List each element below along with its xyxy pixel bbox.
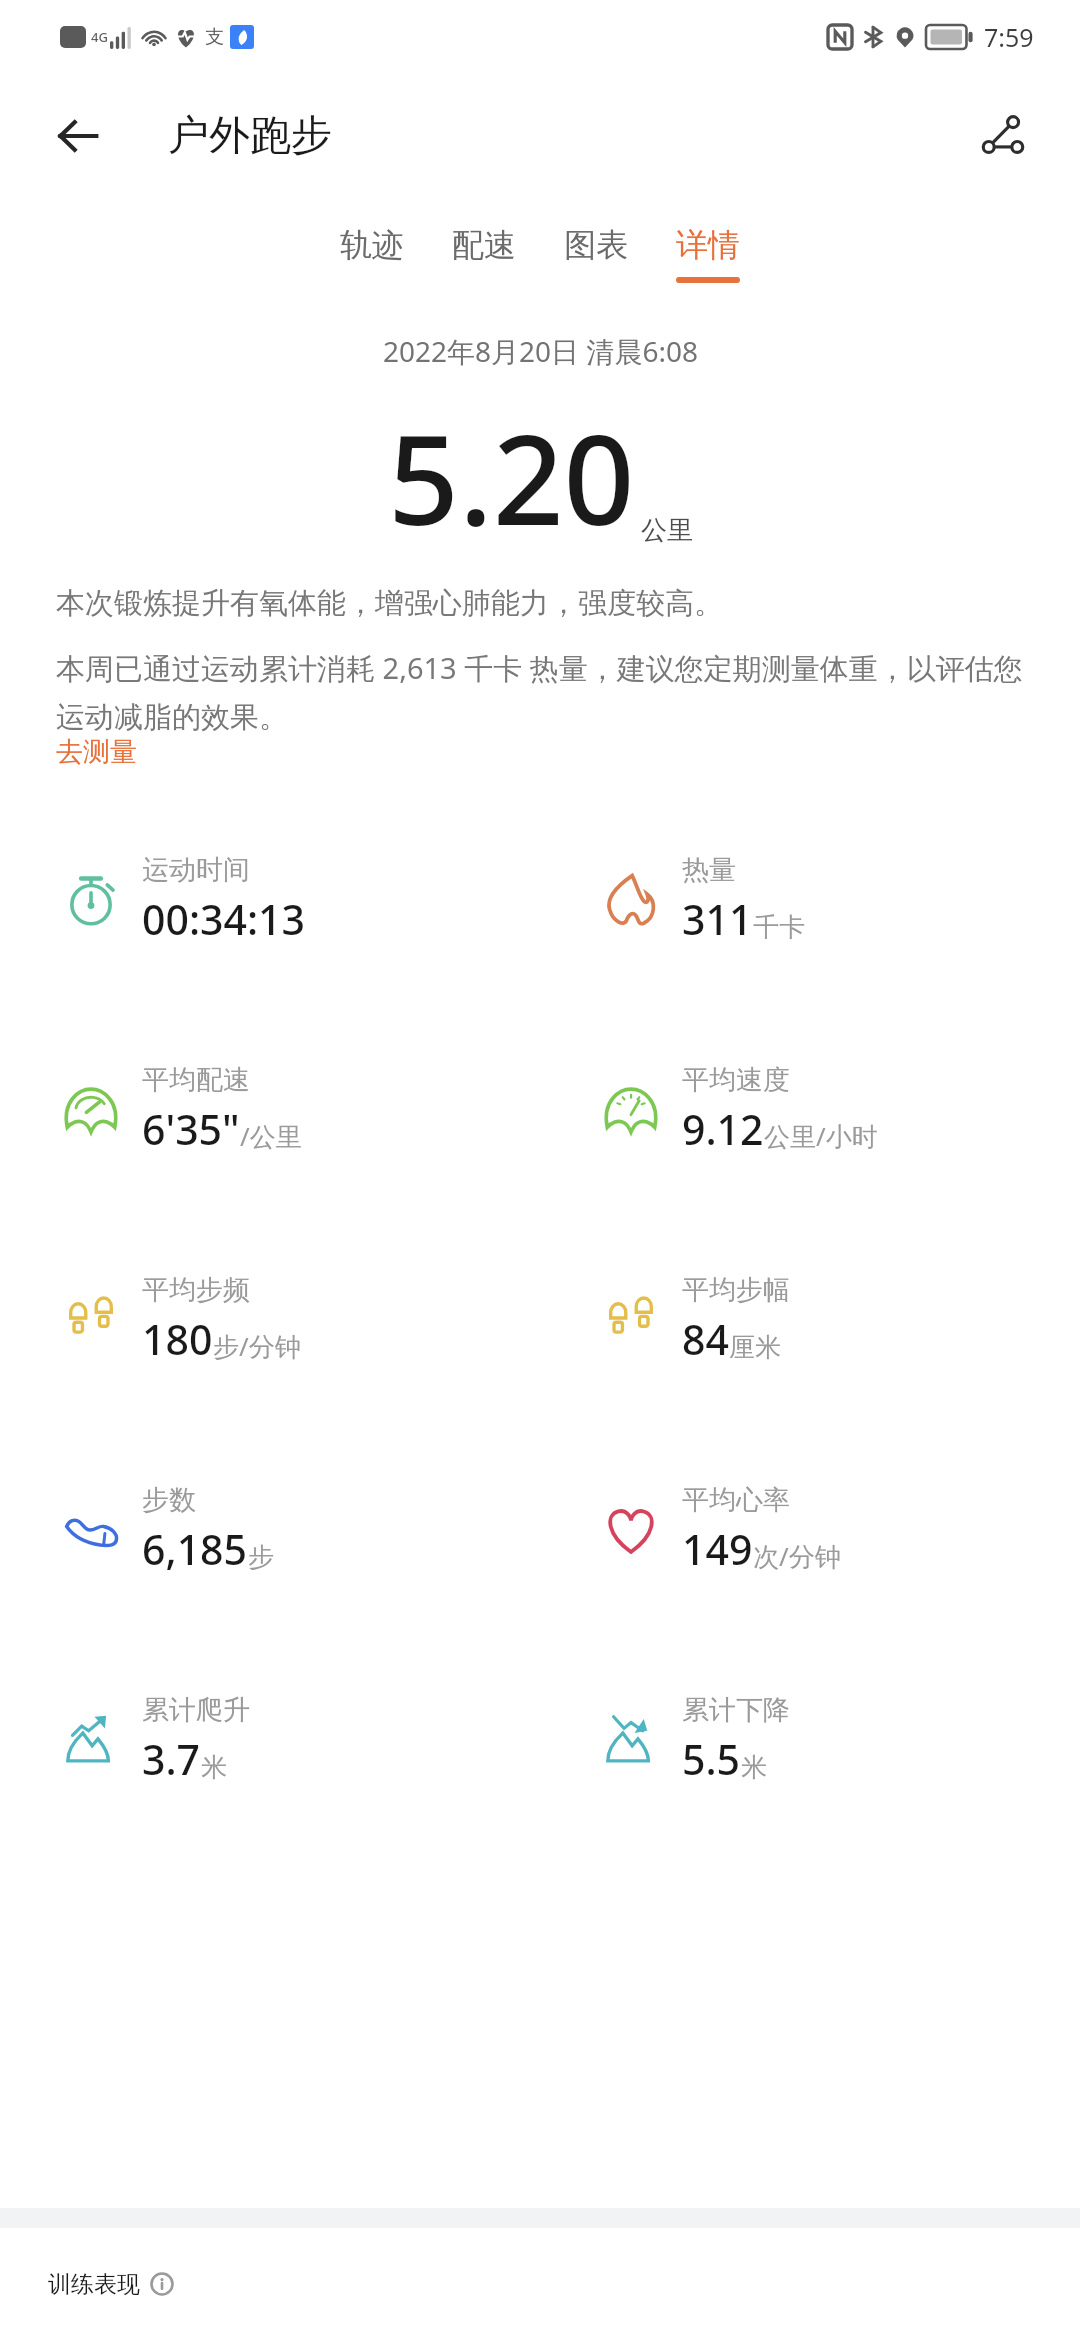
staticText: 步 <box>248 1541 274 1574</box>
staticText: 千卡 <box>753 911 805 944</box>
staticText: 米 <box>741 1751 767 1784</box>
button[interactable]: 平均步幅 <box>540 1215 1080 1425</box>
button[interactable]: 详情 <box>652 217 764 291</box>
staticText: 户外跑步 <box>168 110 332 162</box>
button[interactable]: 平均心率 <box>540 1425 1080 1635</box>
staticText: 训练表现 <box>48 2270 140 2299</box>
staticText: 3.7 <box>142 1731 201 1787</box>
button[interactable]: 累计爬升 <box>0 1635 540 1845</box>
button[interactable]: Back <box>40 103 114 169</box>
staticText: 厘米 <box>729 1331 781 1364</box>
staticText: 9.12 <box>682 1101 764 1157</box>
button[interactable]: 步数 <box>0 1425 540 1635</box>
button[interactable]: 去测量 <box>56 735 137 769</box>
staticText: 累计爬升 <box>142 1693 250 1727</box>
staticText: 311 <box>682 891 753 947</box>
staticText: 180 <box>142 1311 213 1367</box>
staticText: 5.5 <box>682 1731 741 1787</box>
staticText: 公里/小时 <box>764 1118 878 1154</box>
staticText: 7:59 <box>984 20 1034 54</box>
staticText: 步数 <box>142 1483 196 1517</box>
staticText: 米 <box>201 1751 227 1784</box>
button[interactable]: Share <box>968 101 1038 171</box>
staticText: 次/分钟 <box>753 1538 841 1574</box>
staticText: 去测量 <box>56 735 137 769</box>
staticText: 轨迹 <box>340 225 404 265</box>
staticText: 本次锻炼提升有氧体能，增强心肺能力，强度较高。 <box>56 585 723 622</box>
staticText: 配速 <box>452 225 516 265</box>
staticText: 5.20 <box>388 392 635 561</box>
staticText: 平均步频 <box>142 1273 250 1307</box>
staticText: 详情 <box>676 225 740 265</box>
staticText: 运动时间 <box>142 853 250 887</box>
staticText: 6,185 <box>142 1521 248 1577</box>
button[interactable]: 运动时间 <box>0 795 540 1005</box>
button[interactable]: 平均速度 <box>540 1005 1080 1215</box>
button[interactable]: 训练表现 <box>0 2228 1080 2340</box>
button[interactable]: 平均步频 <box>0 1215 540 1425</box>
staticText: 图表 <box>564 225 628 265</box>
staticText: 支 <box>205 25 224 49</box>
staticText: 6'35" <box>142 1101 240 1157</box>
staticText: 00:34:13 <box>142 891 306 947</box>
button[interactable]: 累计下降 <box>540 1635 1080 1845</box>
staticText: 平均速度 <box>682 1063 790 1097</box>
staticText: 平均步幅 <box>682 1273 790 1307</box>
button[interactable]: 平均配速 <box>0 1005 540 1215</box>
staticText: 2022年8月20日 清晨6:08 <box>383 332 698 370</box>
button[interactable]: 图表 <box>540 217 652 291</box>
staticText: 累计下降 <box>682 1693 790 1727</box>
staticText: /公里 <box>240 1118 302 1154</box>
staticText: 4G <box>91 28 108 46</box>
staticText: 步/分钟 <box>213 1328 301 1364</box>
staticText: 公里 <box>641 514 693 547</box>
staticText: 84 <box>682 1311 729 1367</box>
staticText: 149 <box>682 1521 753 1577</box>
button[interactable]: 配速 <box>428 217 540 291</box>
button[interactable]: 轨迹 <box>316 217 428 291</box>
staticText: 平均配速 <box>142 1063 250 1097</box>
staticText: 热量 <box>682 853 736 887</box>
staticText: 平均心率 <box>682 1483 790 1517</box>
staticText: 本周已通过运动累计消耗 2,613 千卡 热量，建议您定期测量体重，以评估您运动… <box>56 648 1024 735</box>
button[interactable]: 热量 <box>540 795 1080 1005</box>
